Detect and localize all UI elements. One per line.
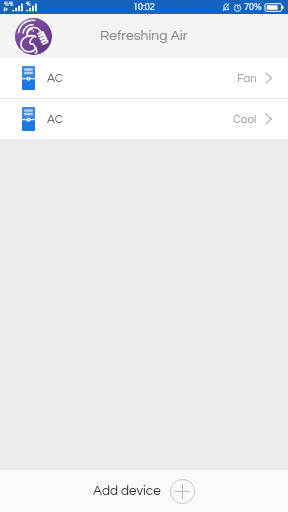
staticText: AC	[47, 113, 64, 125]
staticText: 70%	[244, 3, 262, 12]
staticText: Refreshing Air	[100, 29, 188, 43]
staticText: 10:02	[133, 3, 155, 12]
staticText: Cool	[233, 114, 257, 126]
button[interactable]: App logo	[15, 18, 52, 55]
staticText: Fan	[237, 73, 257, 85]
button[interactable]: AC	[0, 99, 288, 139]
staticText: AC	[47, 72, 64, 84]
button[interactable]: Add device	[0, 470, 288, 512]
button[interactable]: AC	[0, 58, 288, 98]
staticText: Add device	[93, 484, 161, 498]
